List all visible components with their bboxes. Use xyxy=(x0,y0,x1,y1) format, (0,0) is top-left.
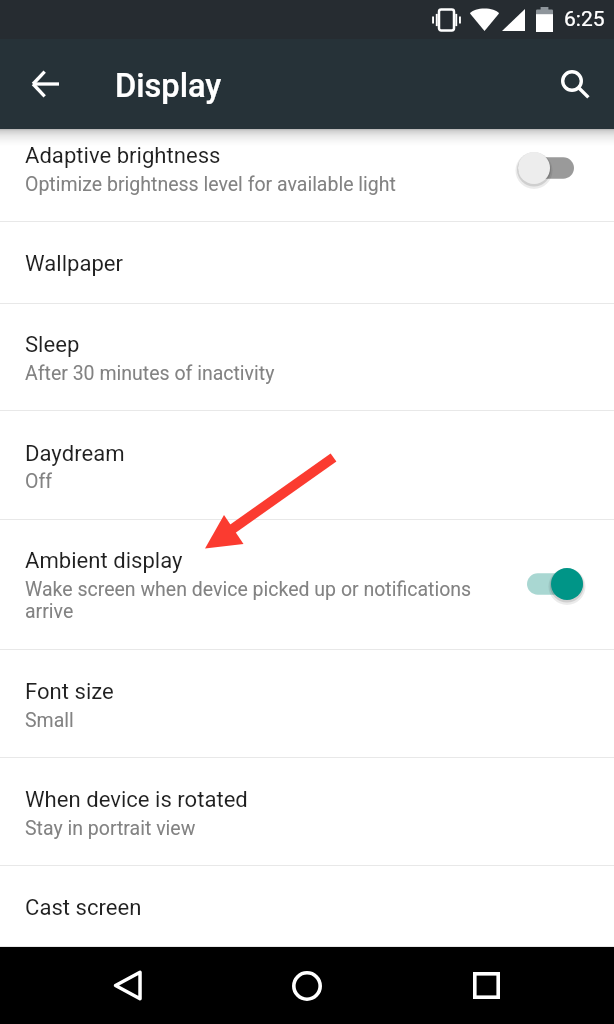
button[interactable]: Adaptive brightness xyxy=(508,140,584,196)
button[interactable]: Cast screen xyxy=(0,866,614,947)
staticText: Adaptive brightness xyxy=(25,142,221,168)
staticText: Stay in portrait view xyxy=(25,817,495,840)
button[interactable]: When device is rotated xyxy=(0,758,614,866)
staticText: Font size xyxy=(25,678,114,704)
staticText: Cast screen xyxy=(25,894,142,920)
button[interactable]: Back xyxy=(63,947,192,1024)
staticText: After 30 minutes of inactivity xyxy=(25,362,495,385)
staticText: 6:25 xyxy=(564,7,605,32)
button[interactable]: Font size xyxy=(0,650,614,758)
button[interactable]: Ambient display xyxy=(517,556,593,612)
button[interactable]: Sleep xyxy=(0,304,614,411)
staticText: Optimize brightness level for available … xyxy=(25,173,495,196)
staticText: Display xyxy=(115,67,222,105)
staticText: When device is rotated xyxy=(25,786,248,812)
button[interactable]: Daydream xyxy=(0,411,614,520)
button[interactable]: Adaptive brightness xyxy=(0,129,614,222)
button[interactable]: Navigate up xyxy=(21,60,69,108)
button[interactable]: Ambient display xyxy=(0,520,614,650)
button[interactable]: Wallpaper xyxy=(0,222,614,304)
button[interactable]: Home xyxy=(242,947,372,1024)
staticText: Wallpaper xyxy=(25,250,124,276)
staticText: Sleep xyxy=(25,331,80,357)
staticText: Off xyxy=(25,470,495,493)
staticText: Ambient display xyxy=(25,547,183,573)
button[interactable]: Recent apps xyxy=(422,947,551,1024)
staticText: Wake screen when device picked up or not… xyxy=(25,578,480,623)
button[interactable]: Search xyxy=(551,60,599,108)
staticText: Daydream xyxy=(25,440,125,466)
staticText: Small xyxy=(25,709,495,732)
